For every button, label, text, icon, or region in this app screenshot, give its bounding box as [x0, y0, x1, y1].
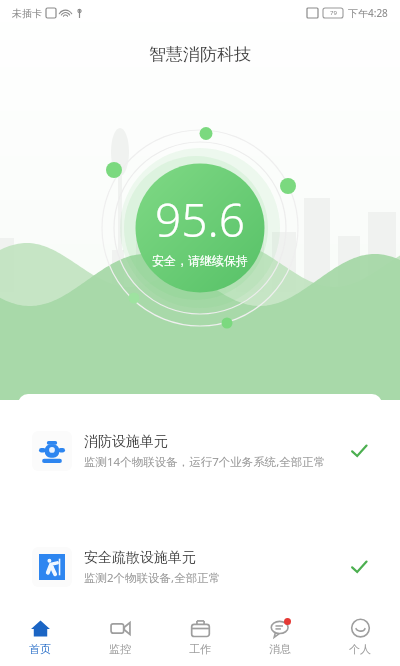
- staticText: 消防设施单元: [84, 433, 168, 451]
- button[interactable]: 安全疏散设施单元: [18, 522, 382, 612]
- button[interactable]: 工作: [160, 608, 240, 666]
- staticText: 79: [330, 9, 337, 17]
- staticText: 未插卡: [12, 7, 42, 20]
- staticText: 监测2个物联设备,全部正常: [84, 570, 221, 586]
- staticText: 监测14个物联设备，运行7个业务系统,全部正常: [84, 454, 326, 470]
- staticText: 工作: [189, 642, 211, 656]
- staticText: 首页: [29, 642, 51, 656]
- other: 工作: [190, 618, 211, 639]
- button[interactable]: 消息: [240, 608, 320, 666]
- staticText: 下午4:28: [348, 6, 388, 20]
- staticText: 监控: [109, 642, 131, 656]
- other: 首页: [30, 618, 51, 639]
- staticText: 智慧消防科技: [149, 44, 251, 65]
- staticText: 个人: [349, 642, 371, 656]
- button[interactable]: 消防设施单元: [18, 394, 382, 508]
- other: 消息: [270, 618, 291, 639]
- staticText: 95.6: [155, 188, 246, 251]
- other: 个人: [350, 618, 371, 639]
- button[interactable]: 首页: [0, 608, 80, 666]
- button[interactable]: 监控: [80, 608, 160, 666]
- staticText: 安全疏散设施单元: [84, 549, 196, 567]
- other: 监控: [110, 618, 131, 639]
- staticText: 安全，请继续保持: [152, 253, 248, 268]
- staticText: 消息: [269, 642, 291, 656]
- button[interactable]: 个人: [320, 608, 400, 666]
